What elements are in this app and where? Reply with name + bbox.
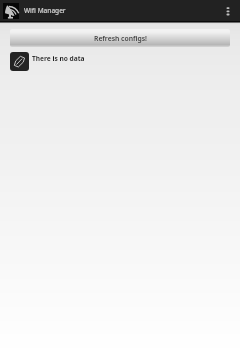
button[interactable]: There is no data bbox=[0, 52, 240, 75]
staticText: There is no data bbox=[32, 54, 85, 63]
staticText: Refresh configs! bbox=[94, 34, 147, 43]
staticText: Wifi Manager bbox=[24, 6, 66, 15]
button[interactable]: More options bbox=[216, 0, 240, 21]
button[interactable]: Refresh configs! bbox=[10, 29, 230, 47]
